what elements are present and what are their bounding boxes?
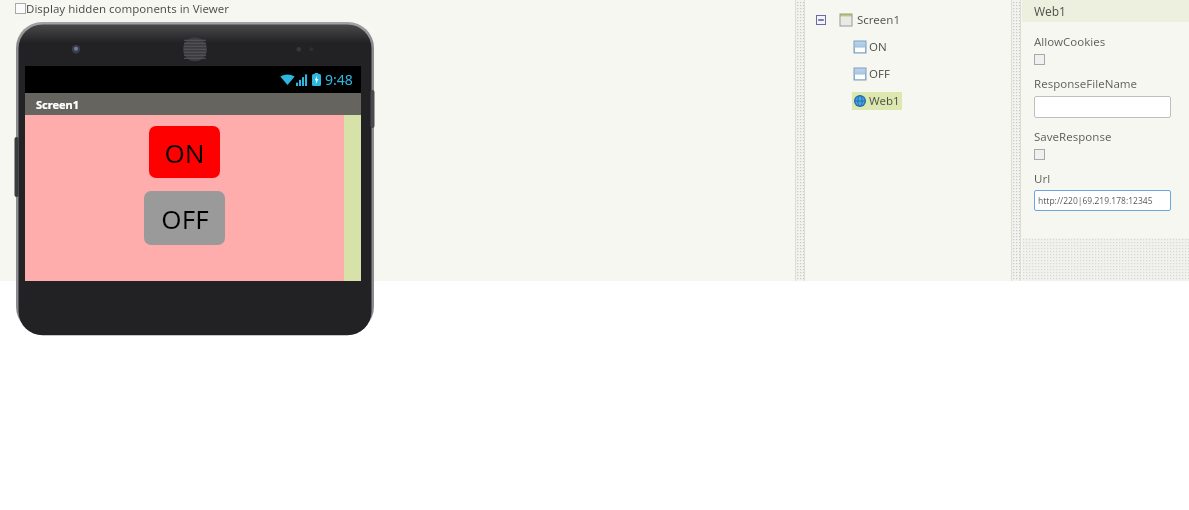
staticText: Web1 (869, 93, 900, 109)
button[interactable]: Collapse (808, 6, 1010, 33)
staticText: Web1 (1034, 3, 1066, 19)
staticText: Screen1 (857, 12, 901, 28)
button[interactable]: ON (808, 33, 1010, 60)
staticText: OFF (869, 66, 890, 82)
staticText: AllowCookies (1034, 34, 1106, 50)
button[interactable]: Toggle (1034, 54, 1045, 65)
staticText: ResponseFileName (1034, 76, 1138, 92)
button[interactable]: Display hidden components in Viewer (15, 3, 230, 19)
button[interactable]: Collapse (816, 15, 826, 25)
staticText: Display hidden components in Viewer (26, 1, 230, 17)
button[interactable]: Toggle (1034, 149, 1045, 160)
staticText: OFF (161, 201, 209, 236)
staticText: ON (164, 135, 205, 170)
staticText: Screen1 (36, 97, 80, 112)
staticText: ON (869, 39, 887, 55)
button[interactable]: Web1 (808, 87, 1010, 114)
staticText: http://220|69.219.178:12345 (1038, 195, 1153, 207)
button[interactable]: http://220|69.219.178:12345 (1034, 190, 1171, 211)
staticText: 9:48 (325, 70, 353, 89)
button[interactable]: OFF (808, 60, 1010, 87)
staticText: Url (1034, 171, 1051, 187)
button[interactable]: ON (149, 126, 220, 178)
staticText: SaveResponse (1034, 129, 1112, 145)
button[interactable] (1034, 96, 1171, 118)
button[interactable]: OFF (144, 191, 225, 245)
